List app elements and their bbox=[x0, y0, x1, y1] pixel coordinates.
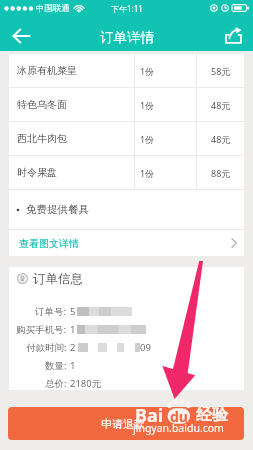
staticText: 总价: bbox=[45, 377, 67, 390]
staticText: jingyan.baidu.com bbox=[133, 421, 224, 435]
staticText: 1份 bbox=[140, 65, 155, 77]
staticText: 购买手机号: bbox=[16, 323, 67, 336]
staticText: 订单详情 bbox=[100, 29, 154, 46]
staticText: 下午1:11 bbox=[111, 3, 143, 14]
staticText: Bai bbox=[135, 403, 164, 428]
staticText: 48元 bbox=[211, 133, 231, 145]
staticText: 48元 bbox=[211, 99, 231, 111]
staticText: 特色乌冬面 bbox=[17, 98, 67, 111]
staticText: 58元 bbox=[211, 65, 231, 77]
staticText: 冰原有机菜皇 bbox=[17, 64, 77, 77]
staticText: 5 bbox=[70, 305, 76, 318]
staticText: 1 bbox=[70, 323, 76, 336]
staticText: 1份 bbox=[140, 133, 155, 145]
staticText: 订单信息 bbox=[33, 271, 83, 287]
staticText: 申请退款 bbox=[101, 417, 145, 431]
staticText: 西北牛肉包 bbox=[17, 132, 67, 145]
staticText: 1份 bbox=[140, 99, 155, 111]
staticText: 付款时间: bbox=[26, 341, 67, 354]
staticText: 2180元 bbox=[70, 377, 102, 390]
staticText: 1 bbox=[70, 359, 76, 372]
button[interactable]: 申请退款 bbox=[8, 407, 244, 440]
staticText: 查看图文详情 bbox=[19, 237, 79, 250]
button[interactable]: Back bbox=[3, 20, 39, 51]
button[interactable]: 查看图文详情 bbox=[9, 230, 244, 256]
staticText: 1份 bbox=[140, 167, 155, 179]
staticText: 09 bbox=[140, 341, 151, 354]
staticText: 2 bbox=[70, 341, 76, 354]
staticText: 数量: bbox=[45, 359, 67, 372]
staticText: 免费提供餐具 bbox=[26, 203, 89, 216]
staticText: 88元 bbox=[211, 167, 231, 179]
staticText: 订单号: bbox=[35, 305, 67, 318]
button[interactable]: Share bbox=[215, 20, 251, 51]
staticText: du bbox=[170, 407, 188, 426]
staticText: 经验 bbox=[196, 405, 228, 425]
staticText: 中国联通 bbox=[36, 3, 70, 14]
staticText: 时令果盘 bbox=[17, 166, 57, 179]
